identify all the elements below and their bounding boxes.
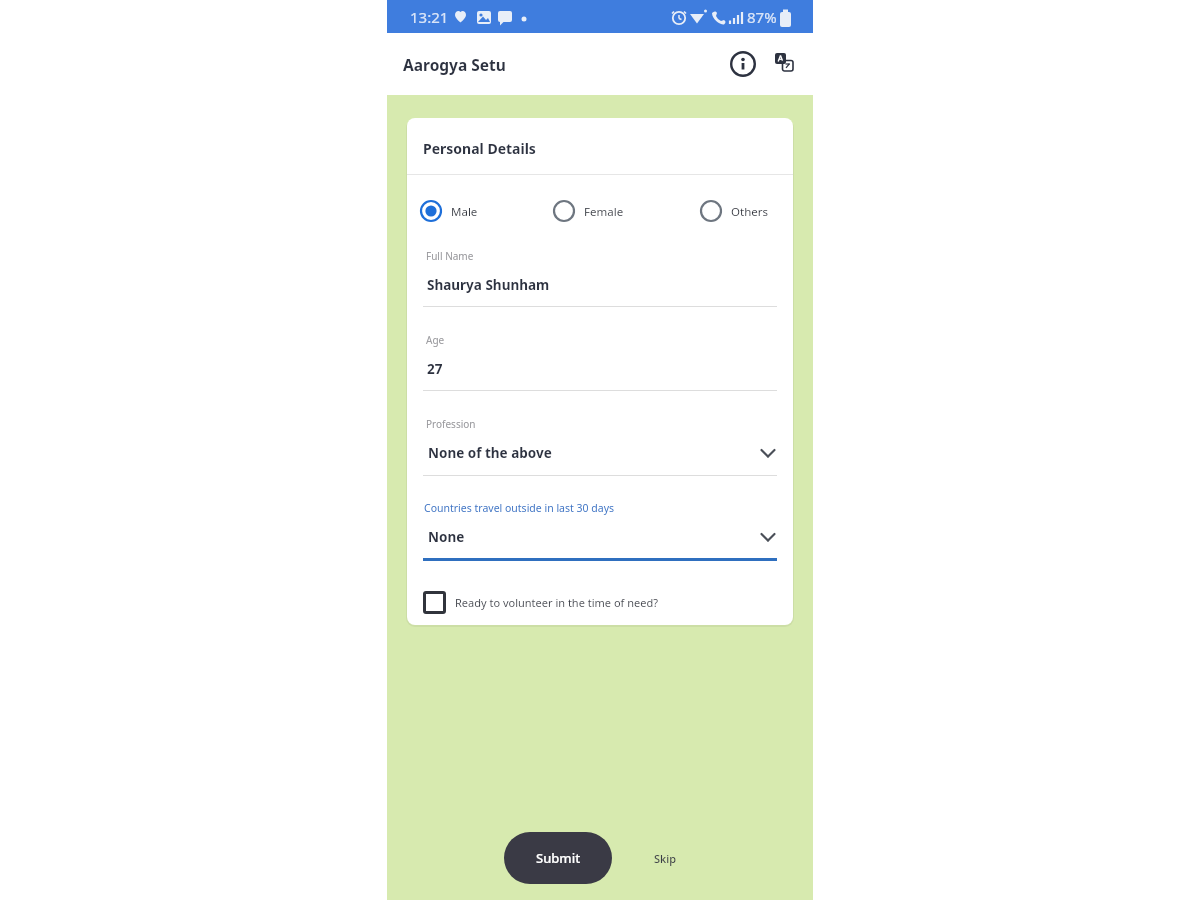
staticText: Female xyxy=(584,204,624,220)
button[interactable]: Male xyxy=(420,197,447,225)
staticText: Submit xyxy=(536,849,581,867)
staticText: None of the above xyxy=(428,444,552,462)
button[interactable]: Submit xyxy=(504,832,612,884)
staticText: Others xyxy=(731,204,768,220)
staticText: Aarogya Setu xyxy=(403,54,506,75)
staticText: 87% xyxy=(747,7,777,27)
staticText: Age xyxy=(426,333,445,347)
staticText: Full Name xyxy=(426,249,474,263)
button[interactable]: Female xyxy=(553,197,593,225)
staticText: 13:21 xyxy=(410,7,449,27)
button[interactable]: Skip xyxy=(642,845,687,871)
staticText: Countries travel outside in last 30 days xyxy=(424,501,615,515)
button[interactable]: None xyxy=(407,522,793,552)
staticText: Shaurya Shunham xyxy=(427,276,550,294)
staticText: None xyxy=(428,528,465,546)
button[interactable]: Others xyxy=(700,197,737,225)
staticText: Personal Details xyxy=(423,139,536,158)
staticText: Skip xyxy=(654,851,676,866)
button[interactable] xyxy=(775,53,795,73)
button[interactable]: None of the above xyxy=(407,438,793,468)
staticText: 27 xyxy=(427,360,443,378)
staticText: Profession xyxy=(426,417,476,431)
button[interactable]: Ready to volunteer in the time of need? xyxy=(423,584,793,616)
staticText: Male xyxy=(451,204,478,220)
staticText: Ready to volunteer in the time of need? xyxy=(455,595,658,610)
button[interactable] xyxy=(730,51,756,77)
